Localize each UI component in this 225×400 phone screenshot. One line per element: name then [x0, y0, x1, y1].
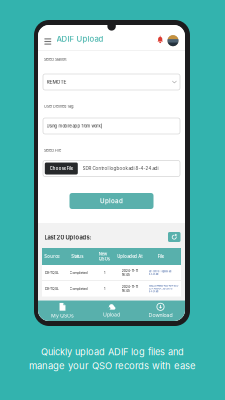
staticText: My QSOs	[51, 313, 74, 319]
button[interactable]: REMOTE	[43, 74, 180, 90]
staticText: Last 20 Uploads:	[44, 234, 91, 241]
staticText: 1	[104, 287, 105, 291]
button[interactable]: Profile	[166, 34, 179, 47]
button[interactable]: Choose File	[43, 161, 80, 176]
staticText: Download	[148, 312, 172, 318]
staticText: manage your QSO records with ease	[29, 360, 196, 372]
staticText: User Defined Tag:	[44, 104, 74, 109]
staticText: 2024-11-11 16:45	[122, 269, 138, 277]
staticText: 2024-11-11 16:45	[122, 285, 138, 293]
button[interactable]: Upload	[87, 300, 136, 321]
staticText: DX-TQSL	[45, 287, 59, 291]
staticText: Status	[71, 254, 83, 259]
staticText: DX-TQSL	[45, 271, 59, 275]
staticText: Upload	[100, 197, 123, 205]
staticText: sdr control logbook adi 8-4-24.adi	[149, 270, 172, 275]
staticText: SDR Control logbook adi 8-4-24.adi	[83, 166, 159, 171]
staticText: Quickly upload ADIF log files and	[41, 346, 184, 358]
button[interactable]: My QSOs	[38, 300, 87, 321]
staticText: ADIF Upload	[57, 34, 104, 44]
staticText: REMOTE	[46, 79, 66, 85]
staticText: File	[158, 254, 164, 259]
staticText: Uploaded At	[117, 254, 142, 259]
staticText: Completed	[69, 287, 87, 291]
button[interactable]: Download	[136, 300, 185, 321]
staticText: 1	[104, 271, 105, 275]
button[interactable]: Upload	[69, 193, 153, 209]
staticText: WR2LJ51448900-4033-40F4-8512-EDA4000F0A_…	[149, 285, 179, 293]
staticText: Select File	[44, 148, 61, 153]
staticText: Upload	[103, 311, 120, 318]
staticText: Completed	[69, 271, 87, 275]
staticText: New QSOs	[99, 251, 110, 261]
staticText: Using mobile app from work	[46, 123, 100, 128]
staticText: Choose File	[50, 166, 73, 171]
button[interactable]: Refresh	[168, 232, 180, 242]
staticText: Select Station:	[44, 57, 67, 62]
button[interactable]: Menu	[41, 34, 55, 48]
button[interactable]: Notifications	[154, 34, 166, 46]
staticText: Source	[44, 254, 59, 259]
